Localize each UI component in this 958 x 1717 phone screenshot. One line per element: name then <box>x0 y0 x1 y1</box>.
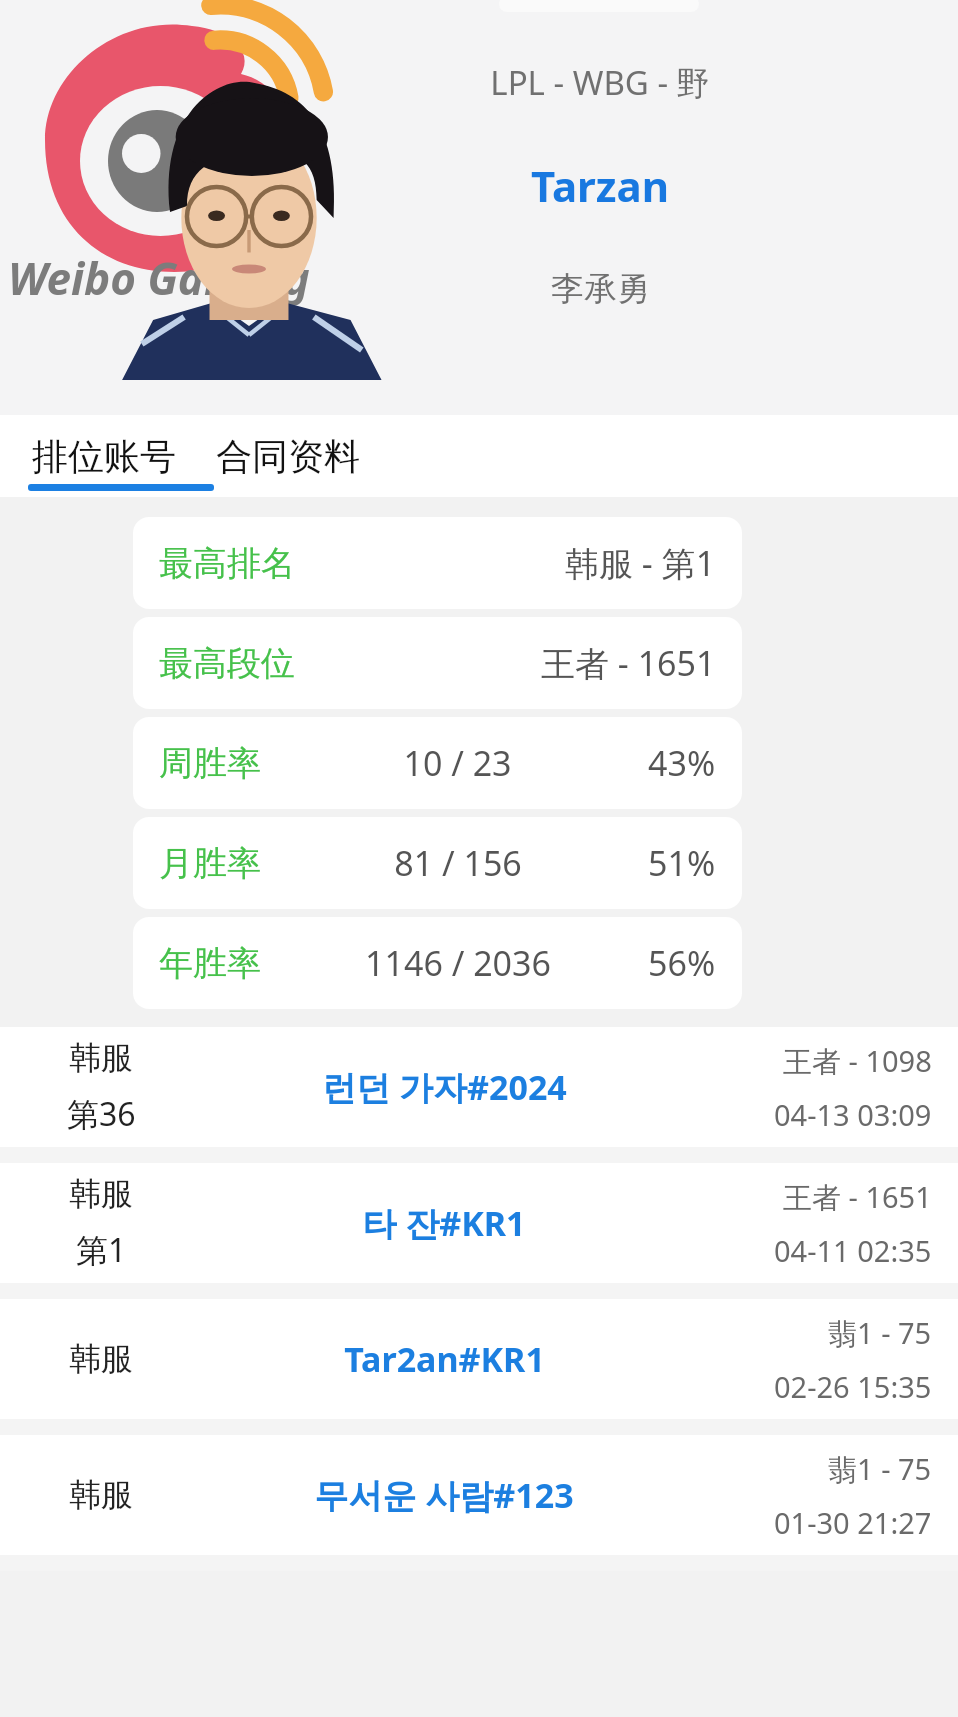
staticText: 月胜率 <box>159 842 261 885</box>
staticText: 最高段位 <box>159 642 295 685</box>
staticText: 韩服 <box>69 1339 133 1379</box>
staticText: 韩服 <box>69 1038 133 1078</box>
staticText: 翡1 - 75 <box>828 1449 932 1489</box>
staticText: 韩服 - 第1 <box>565 540 716 586</box>
staticText: Tar2an#KR1 <box>344 1336 545 1382</box>
staticText: 56% <box>648 940 716 986</box>
staticText: Weibo Gaming <box>8 248 310 308</box>
staticText: 81 / 156 <box>394 840 522 886</box>
staticText: Tarzan <box>531 157 669 214</box>
staticText: 韩服 <box>69 1475 133 1515</box>
staticText: 第1 <box>76 1228 127 1272</box>
staticText: 李承勇 <box>551 268 650 310</box>
staticText: 年胜率 <box>159 942 261 985</box>
staticText: LPL - WBG - 野 <box>490 60 710 105</box>
staticText: 51% <box>648 840 716 886</box>
staticText: 01-30 21:27 <box>774 1503 932 1542</box>
button[interactable]: 韩服 <box>0 1299 958 1419</box>
button[interactable]: 年胜率 <box>133 917 742 1009</box>
staticText: 翡1 - 75 <box>828 1313 932 1353</box>
button[interactable]: 最高段位 <box>133 617 742 709</box>
button[interactable]: 周胜率 <box>133 717 742 809</box>
staticText: 韩服 <box>69 1174 133 1214</box>
button[interactable]: 韩服 <box>0 1027 958 1147</box>
staticText: 王者 - 1651 <box>783 1177 932 1217</box>
staticText: 最高排名 <box>159 542 295 585</box>
button[interactable]: 排位账号 <box>28 426 180 487</box>
staticText: 02-26 15:35 <box>774 1367 932 1406</box>
staticText: 王者 - 1098 <box>783 1041 932 1081</box>
button[interactable]: 韩服 <box>0 1163 958 1283</box>
staticText: 王者 - 1651 <box>541 640 716 686</box>
staticText: 런던 가자#2024 <box>322 1064 567 1110</box>
button[interactable]: 合同资料 <box>212 426 364 487</box>
staticText: 周胜率 <box>159 742 261 785</box>
staticText: 10 / 23 <box>403 740 512 786</box>
staticText: 合同资料 <box>216 434 360 479</box>
staticText: 43% <box>648 740 716 786</box>
staticText: 04-11 02:35 <box>774 1231 932 1270</box>
button[interactable]: 最高排名 <box>133 517 742 609</box>
staticText: 1146 / 2036 <box>365 940 551 986</box>
staticText: 무서운 사람#123 <box>314 1472 574 1518</box>
staticText: 第36 <box>67 1092 136 1136</box>
button[interactable]: 月胜率 <box>133 817 742 909</box>
staticText: 타 잔#KR1 <box>362 1200 526 1246</box>
staticText: 排位账号 <box>32 434 176 479</box>
button[interactable]: 韩服 <box>0 1435 958 1555</box>
staticText: 04-13 03:09 <box>774 1095 932 1134</box>
